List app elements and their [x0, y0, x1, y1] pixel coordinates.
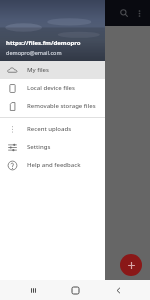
button[interactable]: My files [0, 61, 105, 79]
staticText: Settings [27, 143, 51, 151]
button[interactable]: Recent uploads [0, 120, 105, 138]
button[interactable]: Back [108, 280, 128, 300]
button[interactable]: More options [132, 6, 146, 20]
staticText: Recent uploads [27, 125, 72, 133]
button[interactable]: Add [120, 254, 142, 276]
staticText: Help and feedback [27, 161, 81, 169]
button[interactable]: Removable storage files [0, 97, 105, 115]
staticText: demopro@email.com [6, 49, 62, 56]
button[interactable]: Settings [0, 138, 105, 156]
button[interactable]: Local device files [0, 79, 105, 97]
button[interactable]: Recent apps [23, 280, 43, 300]
button[interactable]: Search [116, 5, 132, 21]
staticText: Removable storage files [27, 102, 96, 110]
staticText: My files [27, 66, 49, 74]
staticText: Local device files [27, 84, 75, 92]
button[interactable]: Home [65, 280, 85, 300]
staticText: https://files.fm/demopro [6, 39, 81, 47]
button[interactable]: Help and feedback [0, 156, 105, 174]
